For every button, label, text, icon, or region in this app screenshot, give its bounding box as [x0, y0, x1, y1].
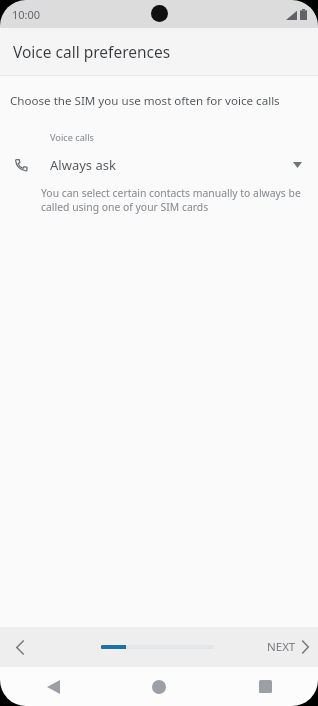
button[interactable]: Always ask	[0, 151, 318, 179]
staticText: NEXT	[267, 639, 296, 655]
button[interactable]: Back	[0, 667, 106, 706]
staticText: Voice call preferences	[13, 41, 171, 62]
button[interactable]: Home	[106, 667, 212, 706]
staticText: Choose the SIM you use most often for vo…	[10, 93, 280, 109]
staticText: Always ask	[50, 156, 293, 174]
staticText: 10:00	[12, 7, 41, 22]
button[interactable]: Back	[0, 627, 40, 667]
button[interactable]: NEXT	[255, 627, 318, 667]
staticText: Voice calls	[50, 131, 94, 144]
staticText: You can select certain contacts manually…	[41, 186, 304, 214]
button[interactable]: Recent apps	[212, 667, 318, 706]
